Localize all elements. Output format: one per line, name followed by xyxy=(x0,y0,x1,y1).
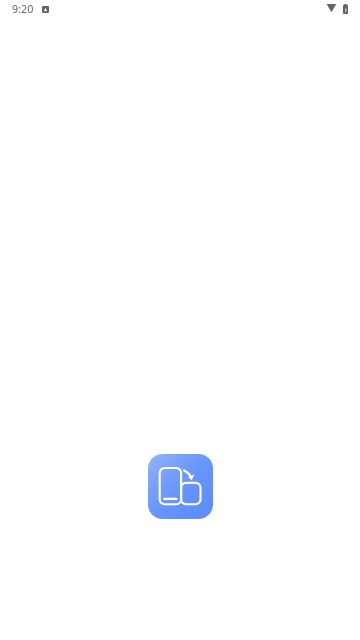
button[interactable]: Screen mirroring app icon xyxy=(148,454,213,519)
staticText: 9:20 xyxy=(12,1,34,16)
